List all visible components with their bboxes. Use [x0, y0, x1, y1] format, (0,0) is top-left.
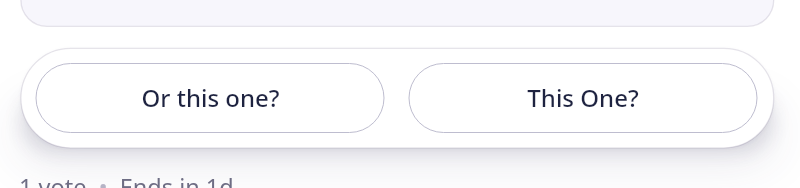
staticText: 1 vote • Ends in 1d — [19, 171, 234, 188]
button[interactable]: This One? — [409, 63, 757, 133]
staticText: Or this one? — [141, 81, 280, 114]
staticText: This One? — [527, 81, 639, 114]
button[interactable]: Or this one? — [36, 63, 384, 133]
